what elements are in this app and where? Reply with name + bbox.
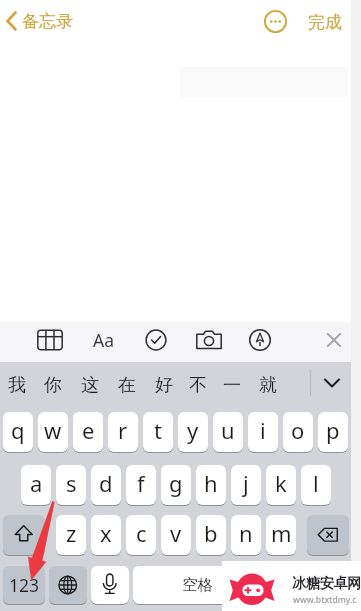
button[interactable] [36,326,64,354]
button[interactable]: r [108,412,138,452]
staticText: t [154,415,162,445]
staticText: n [239,518,253,548]
button[interactable]: 空格 [133,566,261,604]
staticText: e [82,415,95,445]
staticText: www.btxtdmy.com [293,594,360,606]
button[interactable]: y [178,412,208,452]
button[interactable] [262,8,289,35]
button[interactable]: b [196,515,226,555]
button[interactable] [49,566,87,604]
button[interactable]: m [266,515,296,555]
staticText: 一 [223,374,241,397]
button[interactable] [3,515,45,555]
staticText: 空格 [182,575,213,595]
button[interactable]: 这 [76,371,104,399]
button[interactable] [246,326,274,354]
staticText: s [66,468,77,498]
staticText: 换行 [292,576,322,595]
staticText: v [170,518,182,548]
button[interactable]: s [56,465,86,505]
button[interactable]: c [126,515,156,555]
button[interactable]: 你 [39,371,67,399]
button[interactable]: i [248,412,278,452]
staticText: 我 [8,374,26,397]
button[interactable]: 我 [3,371,31,399]
staticText: 好 [155,374,173,397]
button[interactable]: l [301,465,331,505]
button[interactable]: j [231,465,261,505]
staticText: c [136,518,147,548]
button[interactable]: z [56,515,86,555]
button[interactable]: 完成 [302,11,348,33]
staticText: 就 [259,374,277,397]
button[interactable]: Aa [89,326,117,354]
staticText: f [137,468,145,498]
button[interactable]: q [3,412,33,452]
button[interactable]: 换行 [265,566,349,604]
button[interactable]: 123 [3,566,45,604]
staticText: g [169,468,183,498]
staticText: k [275,468,287,498]
button[interactable]: e [73,412,103,452]
button[interactable]: a [21,465,51,505]
staticText: p [326,415,340,445]
staticText: i [260,415,266,445]
button[interactable]: d [91,465,121,505]
button[interactable]: 一 [218,371,246,399]
staticText: h [204,468,218,498]
button[interactable] [320,326,348,354]
button[interactable]: x [91,515,121,555]
button[interactable]: 备忘录 [4,9,84,35]
button[interactable] [318,369,346,397]
staticText: q [11,415,25,445]
button[interactable]: o [283,412,313,452]
button[interactable] [91,566,129,604]
button[interactable]: p [318,412,348,452]
staticText: w [44,415,62,445]
staticText: 备忘录 [22,11,73,32]
staticText: d [99,468,113,498]
button[interactable]: n [231,515,261,555]
staticText: 你 [44,374,62,397]
staticText: 在 [118,374,136,397]
button[interactable]: f [126,465,156,505]
staticText: z [66,518,77,548]
staticText: 完成 [308,12,342,33]
staticText: j [243,468,249,498]
button[interactable]: k [266,465,296,505]
button[interactable]: 在 [113,371,141,399]
staticText: 不 [189,374,207,397]
staticText: r [118,415,128,445]
button[interactable]: 不 [184,371,212,399]
button[interactable]: v [161,515,191,555]
staticText: u [221,415,235,445]
staticText: 123 [9,573,40,597]
button[interactable]: h [196,465,226,505]
button[interactable] [307,515,349,555]
staticText: b [204,518,218,548]
button[interactable]: t [143,412,173,452]
button[interactable]: u [213,412,243,452]
staticText: m [271,518,292,548]
staticText: a [30,468,43,498]
button[interactable]: 就 [254,371,282,399]
staticText: y [187,415,199,445]
button[interactable] [195,326,223,354]
staticText: x [100,518,112,548]
staticText: 冰糖安卓网 [292,574,361,592]
button[interactable]: g [161,465,191,505]
button[interactable] [142,326,170,354]
staticText: o [291,415,305,445]
button[interactable]: 好 [150,371,178,399]
staticText: Aa [93,328,114,352]
button[interactable]: w [38,412,68,452]
staticText: 这 [81,374,99,397]
staticText: l [313,468,319,498]
